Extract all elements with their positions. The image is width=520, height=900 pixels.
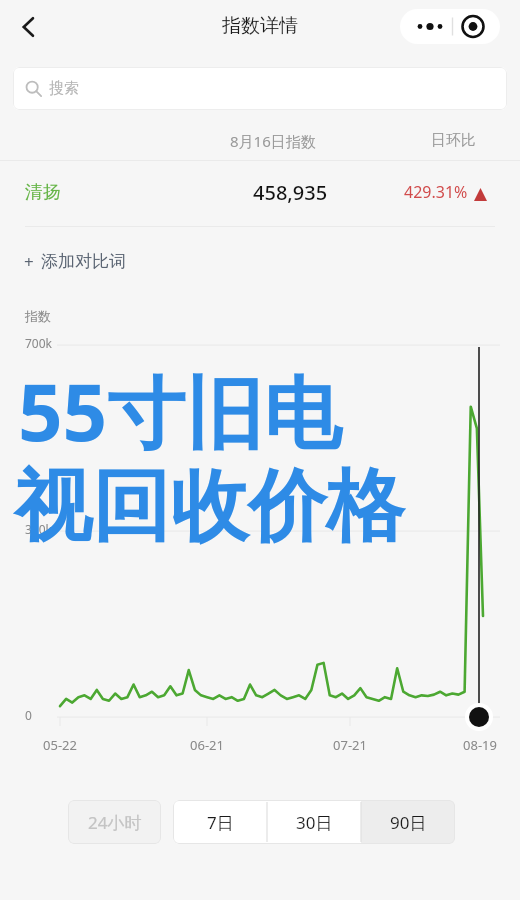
button[interactable]: 7日 [173,800,267,844]
staticText: + [24,250,34,273]
staticText: 日环比 [431,131,476,150]
button[interactable]: 24小时 [68,800,161,844]
button[interactable]: 30日 [267,800,361,844]
staticText: 458,935 [253,179,328,206]
staticText: 搜索 [49,79,79,98]
button[interactable]: 90日 [361,800,455,844]
staticText: 55寸旧电 [18,358,342,465]
staticText: 24小时 [88,811,142,834]
staticText: 清扬 [25,181,61,204]
button[interactable]: Back [6,4,52,50]
staticText: 05-22 [31,736,89,754]
button[interactable]: + [24,240,126,282]
staticText: 指数详情 [222,14,298,38]
staticText: 7日 [207,811,234,834]
staticText: 08-19 [451,736,509,754]
staticText: 指数 [25,308,51,324]
button[interactable]: 搜索 [13,67,507,110]
staticText: 30日 [296,811,333,834]
staticText: 0 [25,707,32,723]
staticText: 添加对比词 [41,251,126,272]
button[interactable]: 清扬 [0,161,520,226]
staticText: 90日 [390,811,427,834]
staticText: 8月16日指数 [230,131,316,151]
staticText: 429.31% [404,181,468,203]
staticText: 07-21 [321,736,379,754]
staticText: 350k [25,521,53,537]
button[interactable]: Menu [400,9,500,44]
staticText: 700k [25,335,53,351]
staticText: 06-21 [178,736,236,754]
staticText: 视回收价格 [14,458,404,556]
